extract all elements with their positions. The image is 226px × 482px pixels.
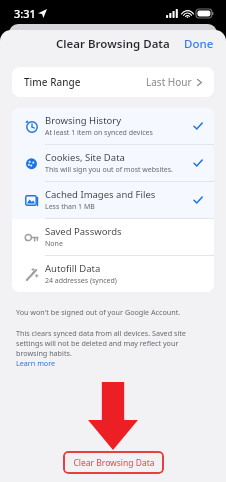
staticText: At least 1 item on synced devices [45, 128, 153, 138]
staticText: Browsing History [45, 114, 122, 127]
staticText: Time Range [24, 75, 81, 89]
button[interactable]: Autofill Data [12, 256, 214, 292]
staticText: None [45, 239, 63, 249]
button[interactable]: Saved Passwords [12, 219, 214, 255]
staticText: 3:31 [14, 6, 36, 21]
staticText: Cookies, Site Data [45, 151, 125, 164]
staticText: Clear Browsing Data [56, 36, 170, 52]
staticText: Less than 1 MB [45, 202, 95, 212]
staticText: 24 addresses (synced) [45, 276, 117, 286]
button[interactable]: Learn more [16, 358, 56, 368]
staticText: Clear Browsing Data [73, 457, 155, 469]
button[interactable]: Done [172, 31, 226, 57]
staticText: Done [184, 36, 214, 52]
staticText: This clears synced data from all devices… [16, 328, 210, 358]
staticText: This will sign you out of most websites. [45, 165, 173, 175]
staticText: Autofill Data [45, 262, 101, 275]
button[interactable]: Browsing History [12, 108, 214, 144]
staticText: You won't be signed out of your Google A… [16, 307, 181, 317]
staticText: Last Hour [146, 75, 192, 89]
button[interactable]: Cookies, Site Data [12, 145, 214, 181]
button[interactable]: Cached Images and Files [12, 182, 214, 218]
button[interactable]: Clear Browsing Data [63, 451, 164, 474]
button[interactable]: Time Range [12, 67, 214, 97]
staticText: Learn more [16, 358, 56, 368]
staticText: Cached Images and Files [45, 188, 156, 201]
staticText: Saved Passwords [45, 225, 122, 238]
